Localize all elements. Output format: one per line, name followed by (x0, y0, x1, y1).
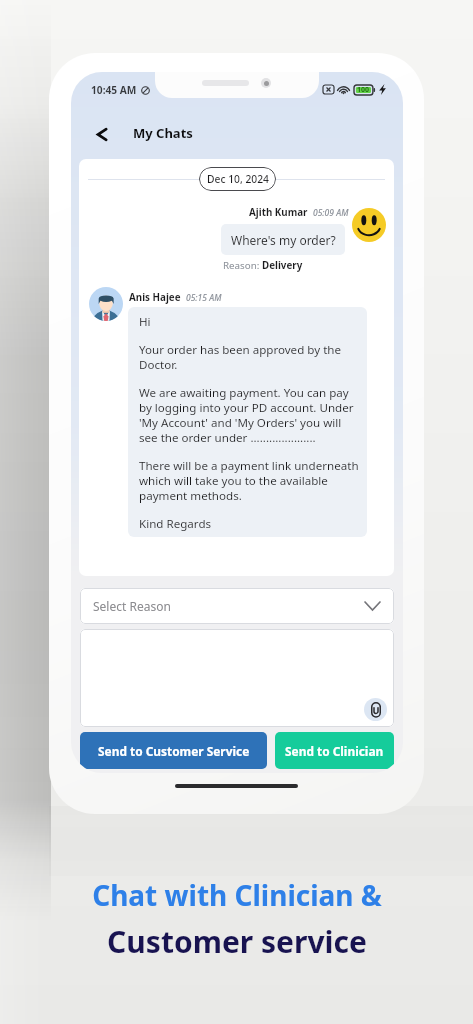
staticText: Select Reason (93, 598, 171, 614)
staticText: My Chats (133, 124, 193, 142)
staticText: Reason: (223, 259, 262, 272)
staticText: We are awaiting payment. You can pay by … (139, 385, 361, 446)
staticText: Dec 10, 2024 (207, 172, 269, 186)
button[interactable]: Back (89, 121, 115, 147)
staticText: Send to Customer Service (98, 743, 250, 759)
staticText: Where's my order? (231, 232, 336, 248)
staticText: Send to Clinician (285, 743, 384, 759)
staticText: Customer service (107, 921, 367, 962)
staticText: Your order has been approved by the Doct… (139, 342, 361, 373)
staticText: Hi (139, 314, 151, 330)
staticText: There will be a payment link underneath … (139, 458, 361, 504)
button[interactable]: Send to Customer Service (80, 732, 267, 769)
staticText: Delivery (262, 259, 303, 272)
button[interactable]: Attach file (364, 698, 387, 721)
staticText: Chat with Clinician & (92, 876, 382, 914)
staticText: Ajith Kumar (249, 206, 308, 219)
button[interactable]: Send to Clinician (275, 732, 394, 769)
staticText: Kind Regards (139, 516, 212, 532)
button[interactable]: Select Reason (80, 588, 394, 624)
staticText: 05:09 AM (313, 207, 349, 219)
staticText: 10:45 AM (91, 83, 137, 97)
staticText: 05:15 AM (186, 292, 222, 304)
staticText: 100 (357, 85, 370, 95)
staticText: Anis Hajee (129, 291, 181, 304)
